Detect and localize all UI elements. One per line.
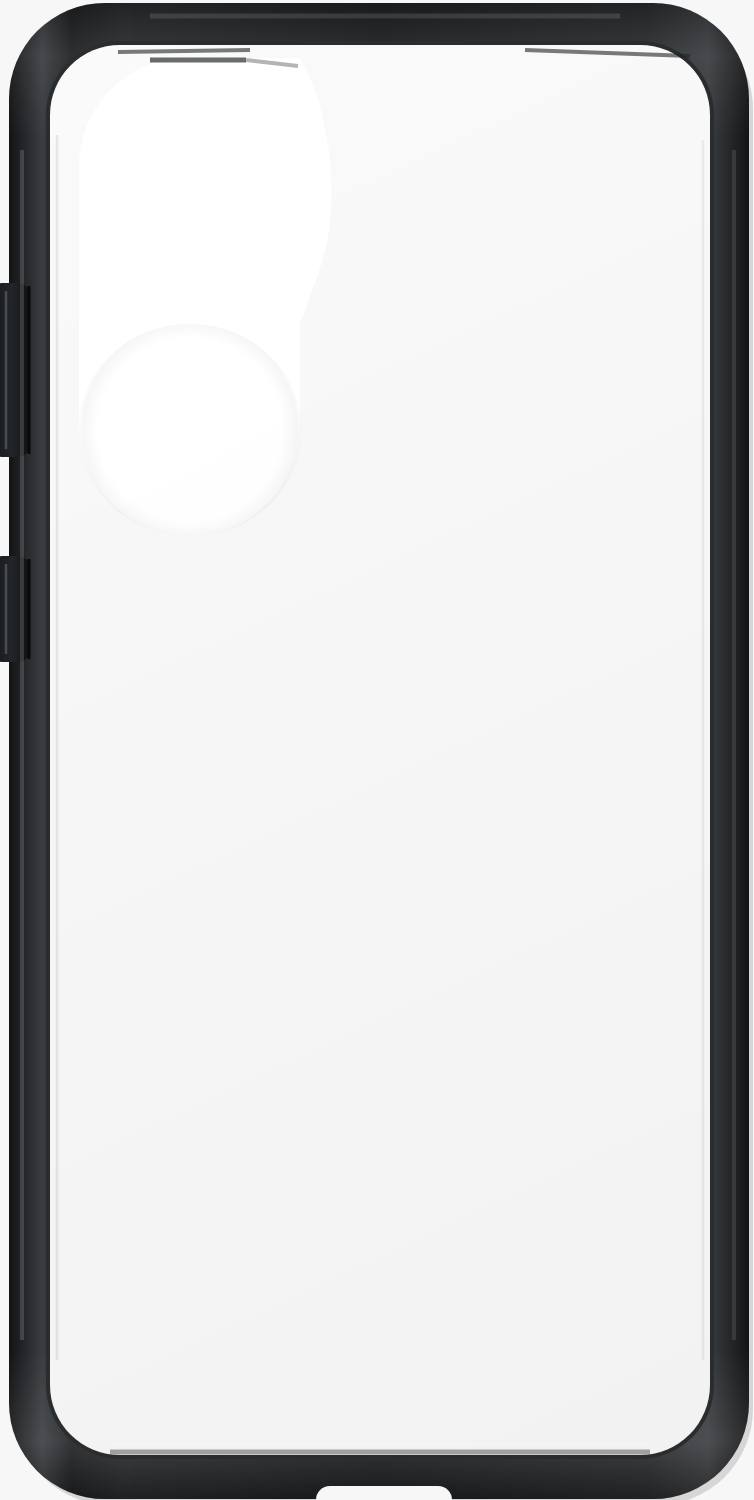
button[interactable]: Phone case product photo, black bumper c… (0, 0, 754, 1500)
